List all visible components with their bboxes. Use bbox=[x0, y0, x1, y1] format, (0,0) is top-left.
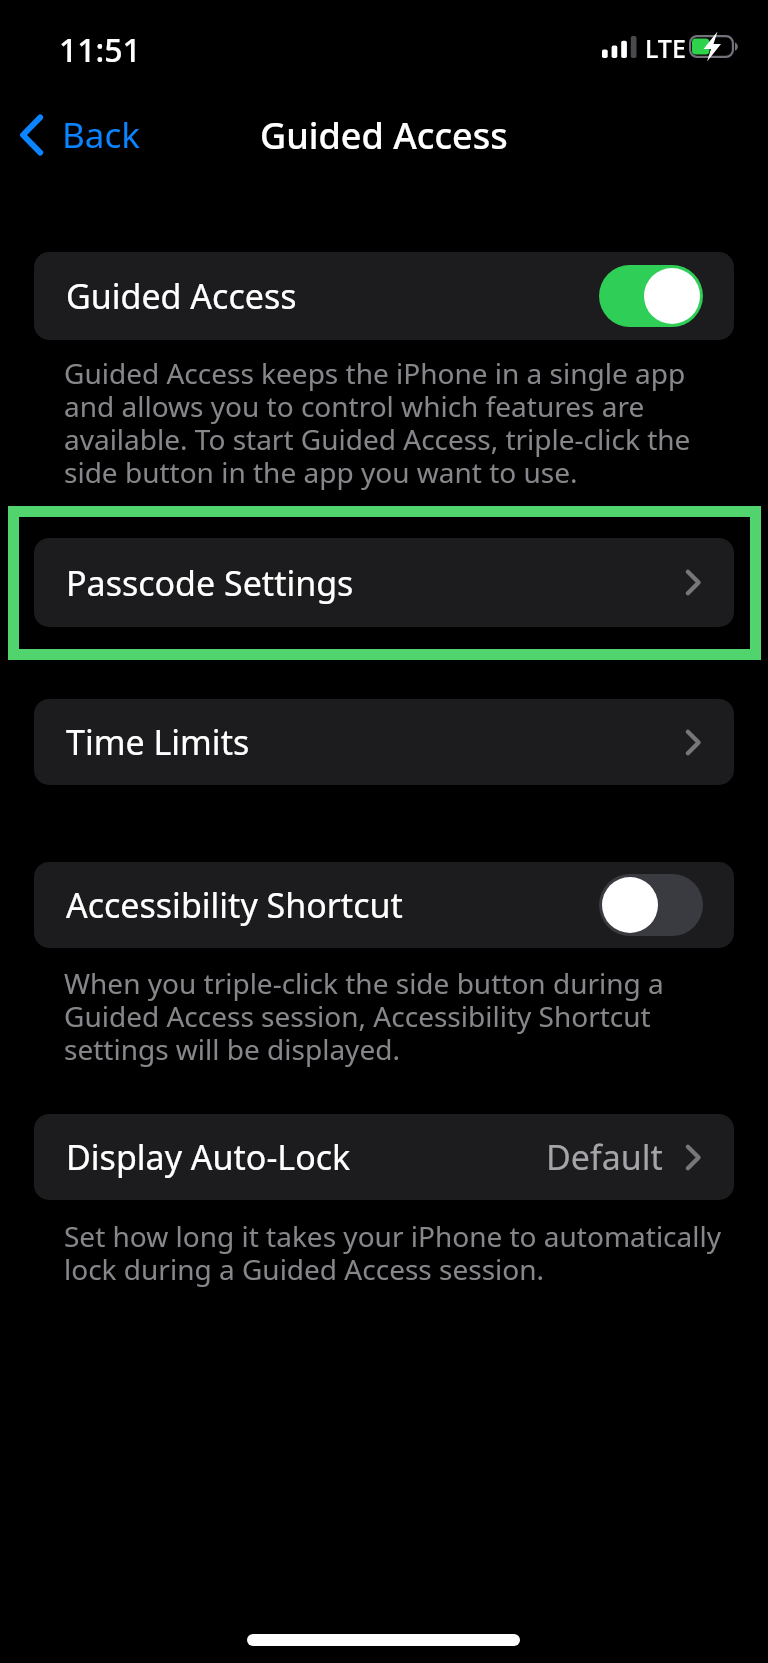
staticText: Guided Access bbox=[260, 111, 508, 160]
staticText: Display Auto-Lock bbox=[66, 1134, 351, 1180]
staticText: Accessibility Shortcut bbox=[66, 882, 403, 928]
button[interactable]: Accessibility Shortcut bbox=[34, 862, 734, 948]
staticText: Passcode Settings bbox=[66, 560, 354, 606]
staticText: Back bbox=[62, 111, 140, 159]
staticText: Guided Access keeps the iPhone in a sing… bbox=[64, 354, 700, 491]
button[interactable]: Guided Access bbox=[34, 252, 734, 340]
other: Open bbox=[685, 570, 701, 595]
button[interactable]: Display Auto-Lock bbox=[34, 1114, 734, 1200]
button[interactable]: Passcode Settings bbox=[34, 538, 734, 627]
staticText: When you triple-click the side button du… bbox=[64, 964, 664, 1068]
staticText: Guided Access bbox=[66, 273, 297, 319]
other: Back bbox=[20, 115, 43, 155]
button[interactable]: Back bbox=[8, 99, 156, 171]
other: Open bbox=[685, 1145, 701, 1170]
button[interactable]: Time Limits bbox=[34, 699, 734, 785]
staticText: Set how long it takes your iPhone to aut… bbox=[64, 1217, 734, 1288]
button[interactable]: Switch off bbox=[599, 874, 703, 936]
button[interactable]: Switch on bbox=[599, 265, 703, 327]
other: Open bbox=[685, 730, 701, 755]
staticText: Time Limits bbox=[66, 719, 250, 765]
staticText: 11:51 bbox=[59, 28, 141, 72]
staticText: Default bbox=[546, 1134, 663, 1180]
staticText: LTE bbox=[645, 31, 686, 65]
